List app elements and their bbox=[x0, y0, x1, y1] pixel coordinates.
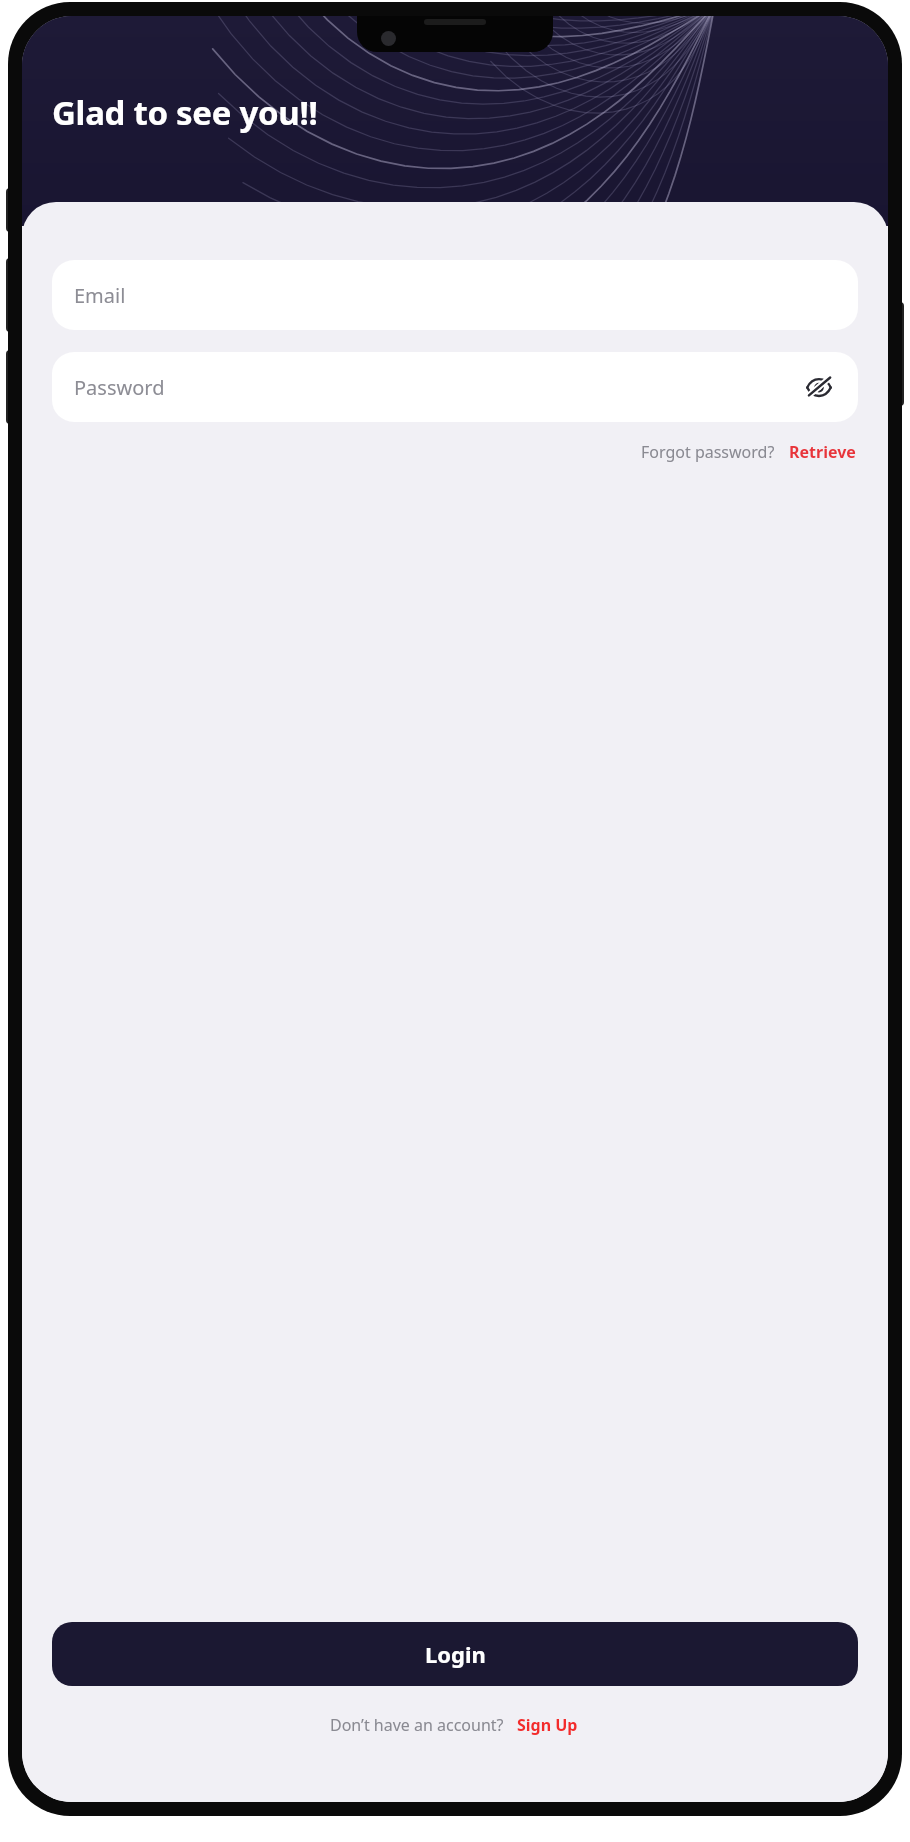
staticText: Retrieve bbox=[789, 441, 856, 463]
button[interactable]: Email bbox=[52, 260, 858, 330]
button[interactable]: Password bbox=[52, 352, 858, 422]
button[interactable]: Login bbox=[52, 1622, 858, 1686]
staticText: Password bbox=[74, 374, 165, 401]
staticText: Forgot password? bbox=[641, 441, 775, 463]
staticText: Don’t have an account? bbox=[330, 1714, 504, 1736]
staticText: Sign Up bbox=[517, 1714, 578, 1736]
staticText: Glad to see you!! bbox=[52, 90, 318, 135]
button[interactable]: Sign Up bbox=[515, 1712, 580, 1738]
button[interactable]: Show password bbox=[802, 370, 836, 404]
staticText: Login bbox=[425, 1639, 486, 1669]
button[interactable]: Retrieve bbox=[787, 439, 858, 465]
staticText: Email bbox=[74, 282, 126, 309]
